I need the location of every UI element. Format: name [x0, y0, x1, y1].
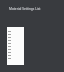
button[interactable]: [7, 48, 24, 51]
button[interactable]: [7, 42, 24, 45]
button[interactable]: [7, 51, 24, 54]
button[interactable]: [7, 54, 24, 57]
button[interactable]: [7, 33, 24, 36]
staticText: Material Settings List: [9, 7, 41, 11]
button[interactable]: [7, 36, 24, 39]
button[interactable]: [7, 57, 24, 60]
button[interactable]: [7, 30, 24, 33]
button[interactable]: [7, 39, 24, 42]
button[interactable]: [7, 45, 24, 48]
